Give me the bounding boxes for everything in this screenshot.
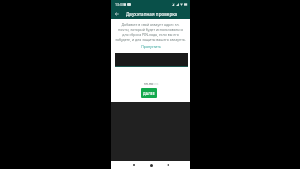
button[interactable]: Back	[113, 10, 121, 18]
staticText: 13:08	[115, 2, 125, 7]
button[interactable]: Recent apps	[131, 162, 137, 168]
staticText: Двухэтапная проверка	[126, 11, 178, 17]
staticText: эл.	[144, 81, 149, 85]
button[interactable]: ДАЛЕЕ	[141, 88, 157, 98]
staticText: ДАЛЕЕ	[143, 91, 155, 96]
button[interactable]: Home	[148, 162, 154, 168]
staticText: чта	[153, 81, 159, 85]
button[interactable]: Back	[165, 162, 171, 168]
staticText: по	[149, 81, 154, 85]
staticText: Добавьте в свой аккаунт адрес эл. почты,…	[115, 22, 186, 42]
button[interactable]: Пропустить	[141, 44, 161, 49]
